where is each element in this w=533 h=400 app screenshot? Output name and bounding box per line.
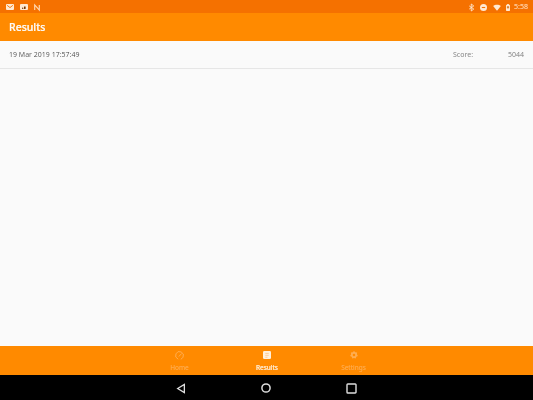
- button[interactable]: 19 Mar 2019 17:57:49: [0, 41, 533, 69]
- button[interactable]: Settings: [310, 346, 397, 375]
- staticText: 19 Mar 2019 17:57:49: [9, 50, 80, 60]
- staticText: Results: [256, 363, 278, 372]
- staticText: Home: [170, 363, 189, 372]
- button[interactable]: Results: [223, 346, 310, 375]
- staticText: Settings: [341, 363, 366, 372]
- staticText: 5044: [508, 50, 525, 60]
- staticText: Results: [9, 20, 46, 34]
- staticText: 5:58: [514, 2, 528, 12]
- button[interactable]: Recents: [341, 378, 361, 398]
- button[interactable]: Home: [256, 378, 276, 398]
- button[interactable]: Home: [136, 346, 223, 375]
- staticText: Score:: [453, 50, 474, 60]
- button[interactable]: Back: [171, 378, 191, 398]
